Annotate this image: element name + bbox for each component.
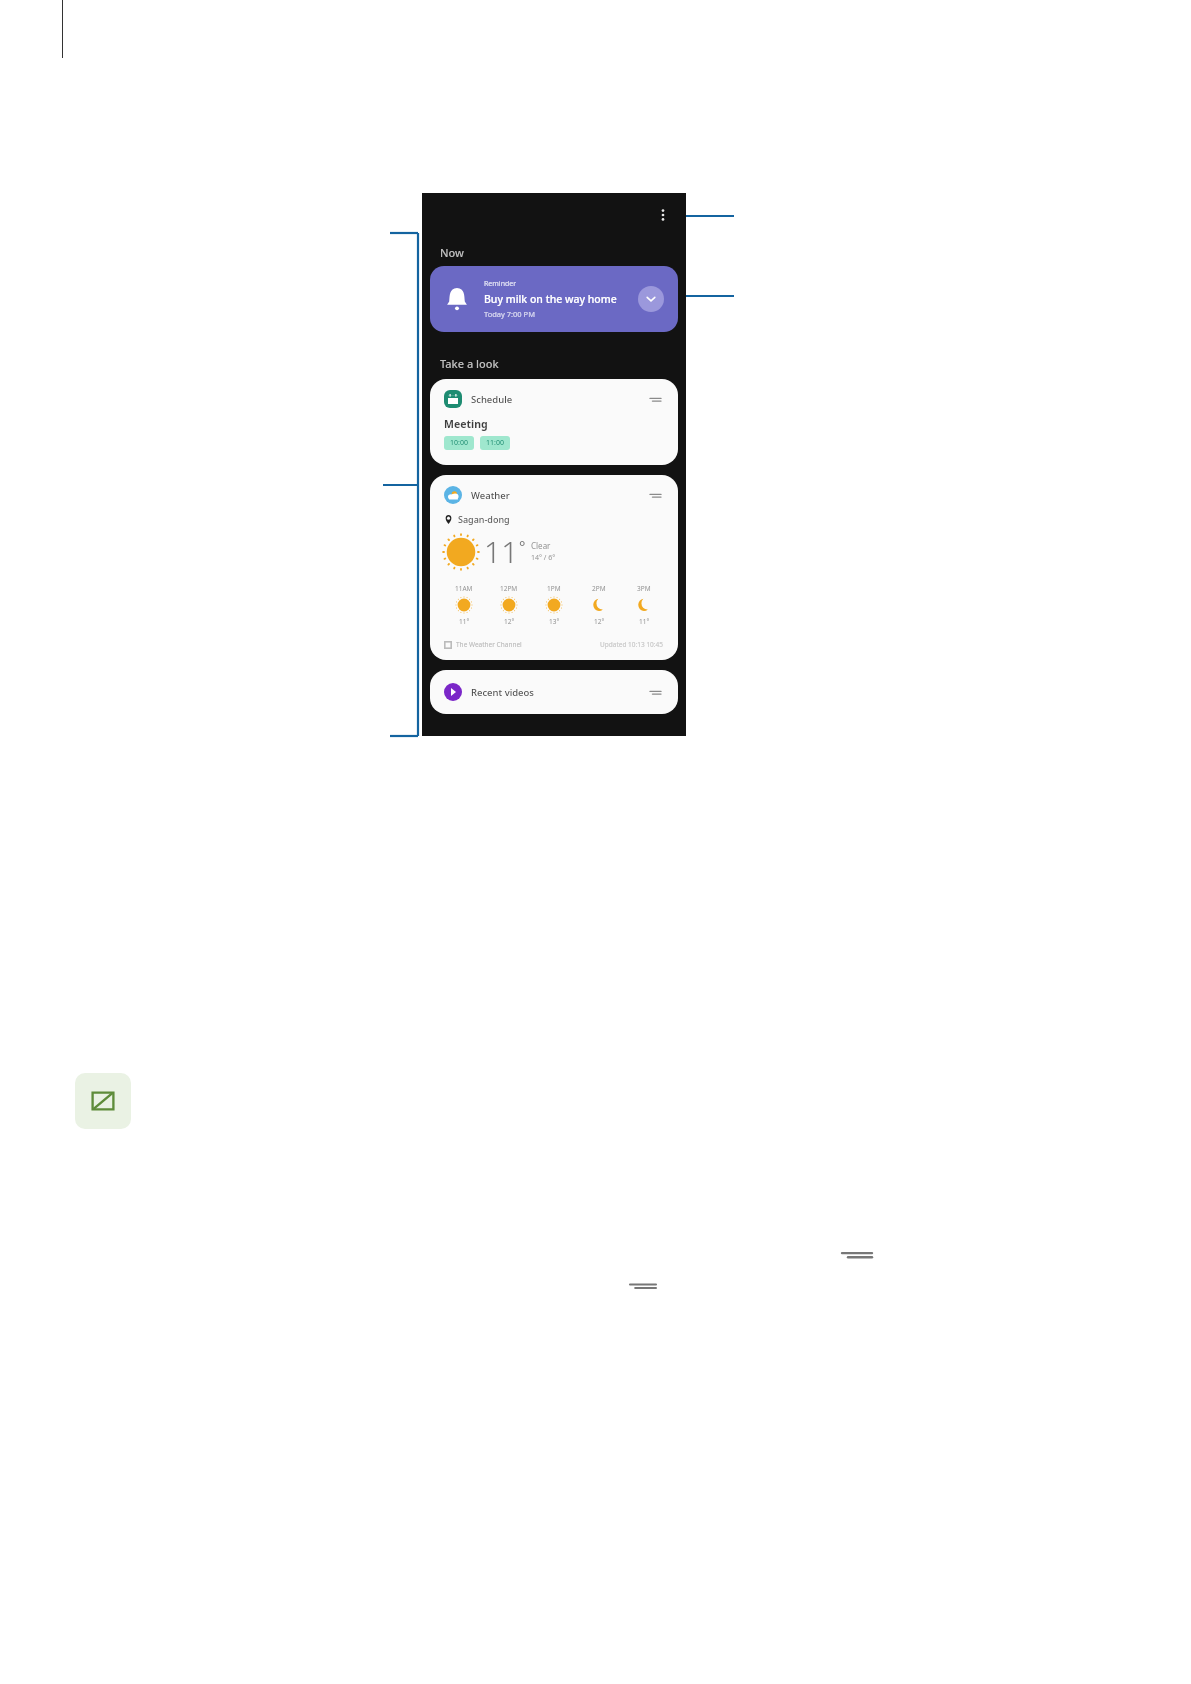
- button[interactable]: Weather: [430, 475, 678, 660]
- staticText: 12°: [594, 617, 605, 626]
- button[interactable]: Card options: [646, 390, 664, 408]
- button[interactable]: Recent videos: [430, 670, 678, 714]
- staticText: Sagan-dong: [458, 513, 510, 525]
- staticText: 11:00: [486, 438, 504, 448]
- staticText: Buy milk on the way home: [484, 292, 617, 306]
- staticText: 11: [484, 531, 519, 572]
- staticText: °: [519, 536, 526, 556]
- staticText: 11°: [459, 617, 470, 626]
- staticText: 13°: [549, 617, 560, 626]
- staticText: Take a look: [440, 356, 499, 371]
- staticText: Clear: [531, 540, 551, 551]
- staticText: Today 7:00 PM: [484, 309, 535, 319]
- staticText: Reminder: [484, 279, 517, 289]
- button[interactable]: Card options: [646, 683, 664, 701]
- staticText: 3PM: [637, 584, 651, 593]
- staticText: The Weather Channel: [456, 640, 522, 649]
- button[interactable]: More options: [650, 202, 676, 228]
- staticText: Weather: [471, 489, 510, 502]
- staticText: 1PM: [547, 584, 561, 593]
- staticText: 12PM: [500, 584, 518, 593]
- button[interactable]: Schedule: [430, 379, 678, 465]
- staticText: 10:00: [450, 438, 468, 448]
- button[interactable]: Expand reminder: [638, 286, 664, 312]
- staticText: 11°: [639, 617, 650, 626]
- staticText: 2PM: [592, 584, 606, 593]
- staticText: Meeting: [444, 417, 488, 431]
- button[interactable]: Reminder: [430, 266, 678, 332]
- staticText: 14° / 6°: [531, 553, 556, 563]
- button[interactable]: Card options: [646, 486, 664, 504]
- staticText: 12°: [504, 617, 515, 626]
- staticText: Recent videos: [471, 686, 534, 699]
- staticText: 11AM: [455, 584, 473, 593]
- staticText: Updated 10:13 10:45: [600, 640, 664, 649]
- staticText: Schedule: [471, 393, 513, 406]
- staticText: Now: [440, 245, 464, 260]
